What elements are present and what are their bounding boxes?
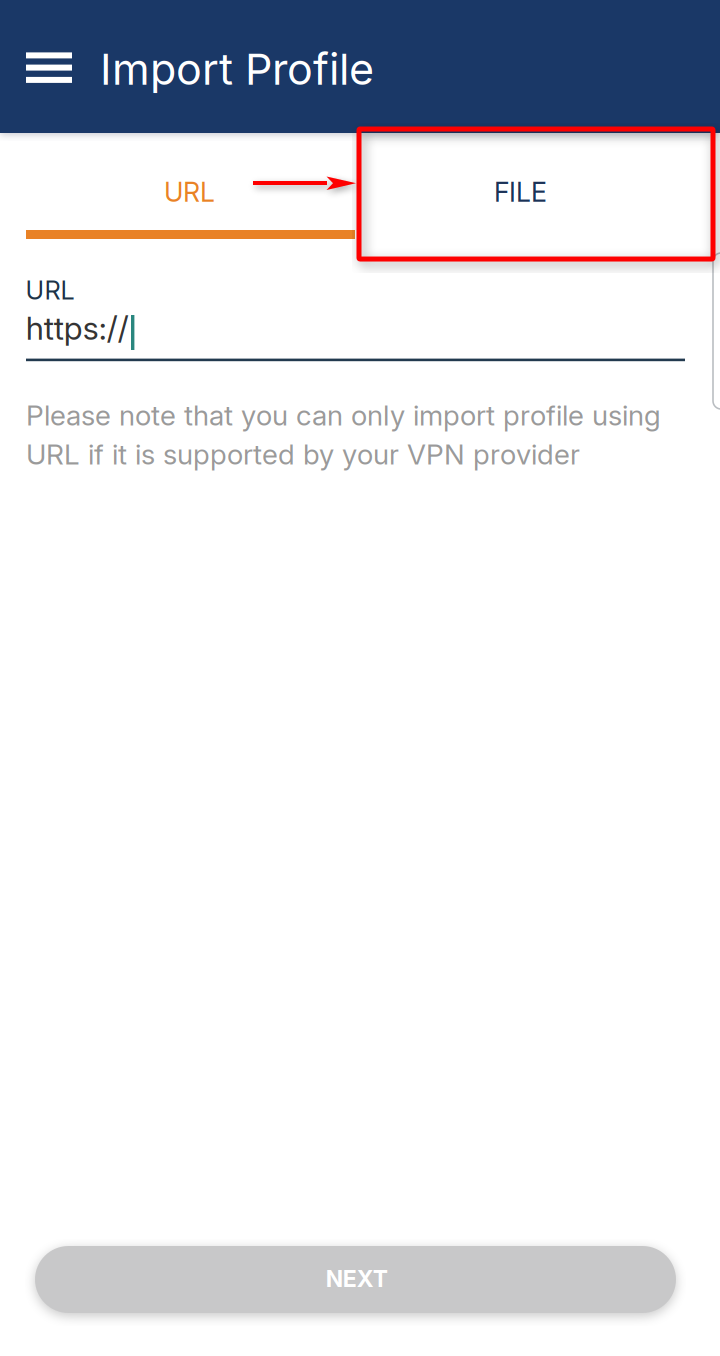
button[interactable]: URL: [26, 133, 355, 230]
staticText: Please note that you can only import pro…: [26, 398, 661, 471]
staticText: URL: [164, 176, 215, 208]
staticText: FILE: [494, 176, 547, 208]
staticText: Import Profile: [100, 43, 374, 95]
button[interactable]: URL: [0, 264, 720, 364]
staticText: NEXT: [326, 1265, 388, 1293]
staticText: URL: [26, 275, 75, 306]
button[interactable]: FILE: [355, 133, 685, 230]
button[interactable]: Open navigation menu: [0, 0, 97, 133]
staticText: https://: [26, 309, 129, 347]
button[interactable]: NEXT: [35, 1246, 676, 1313]
